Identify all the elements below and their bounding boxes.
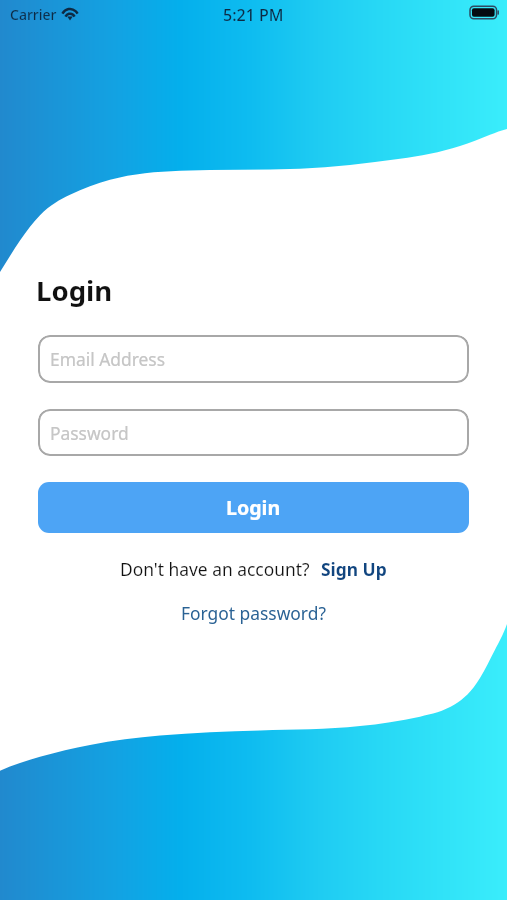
staticText: Login xyxy=(226,494,281,521)
button[interactable]: Password xyxy=(38,409,469,456)
staticText: 5:21 PM xyxy=(223,4,284,26)
staticText: Login xyxy=(36,271,113,309)
staticText: Sign Up xyxy=(321,557,387,581)
staticText: Carrier xyxy=(10,5,57,24)
staticText: Forgot password? xyxy=(181,601,326,625)
button[interactable]: Login xyxy=(38,482,469,533)
button[interactable]: Sign Up xyxy=(321,557,387,581)
staticText: Password xyxy=(50,421,129,445)
button[interactable]: Email Address xyxy=(38,335,469,383)
staticText: Email Address xyxy=(50,347,165,371)
button[interactable]: Forgot password? xyxy=(181,601,326,625)
staticText: Don't have an account? xyxy=(120,557,310,581)
